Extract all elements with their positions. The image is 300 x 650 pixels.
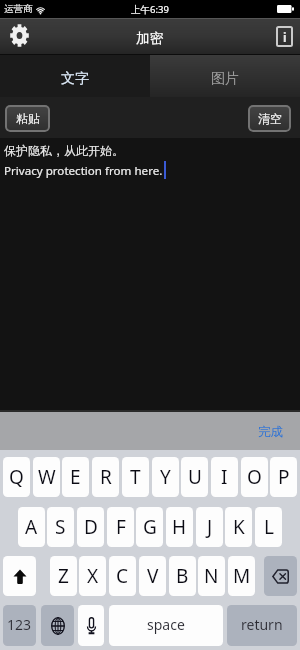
staticText: L xyxy=(264,514,274,540)
button[interactable]: P xyxy=(270,457,297,497)
button[interactable]: M xyxy=(228,556,255,596)
button[interactable]: 图片 xyxy=(150,55,300,97)
button[interactable]: 粘贴 xyxy=(5,105,50,132)
button[interactable]: Next keyboard xyxy=(41,605,74,646)
staticText: 123 xyxy=(7,615,32,634)
button[interactable]: I xyxy=(211,457,238,497)
button[interactable]: 清空 xyxy=(248,105,291,132)
staticText: Y xyxy=(160,464,171,490)
staticText: 加密 xyxy=(136,30,164,47)
button[interactable]: return xyxy=(227,605,297,646)
staticText: N xyxy=(204,563,219,589)
button[interactable]: E xyxy=(62,457,89,497)
button[interactable]: A xyxy=(18,507,45,547)
staticText: Z xyxy=(58,563,69,589)
button[interactable]: L xyxy=(255,507,282,547)
staticText: U xyxy=(188,464,202,490)
button[interactable]: 文字 xyxy=(0,55,150,97)
button[interactable]: Info xyxy=(276,26,293,47)
staticText: K xyxy=(233,514,245,540)
button[interactable]: U xyxy=(181,457,208,497)
button[interactable]: Q xyxy=(3,457,30,497)
button[interactable]: Backspace xyxy=(264,556,297,596)
button[interactable]: R xyxy=(92,457,119,497)
button[interactable]: Shift xyxy=(3,556,36,596)
button[interactable]: C xyxy=(109,556,136,596)
staticText: C xyxy=(116,563,129,589)
staticText: return xyxy=(241,615,283,634)
button[interactable]: B xyxy=(169,556,196,596)
button[interactable]: Settings xyxy=(4,20,34,50)
staticText: 完成 xyxy=(258,424,283,440)
staticText: 文字 xyxy=(61,70,89,88)
staticText: F xyxy=(116,514,126,540)
staticText: 保护隐私，从此开始。 xyxy=(4,143,124,158)
staticText: 清空 xyxy=(258,111,282,126)
button[interactable]: X xyxy=(79,556,106,596)
staticText: X xyxy=(87,563,99,589)
staticText: 图片 xyxy=(211,70,239,88)
button[interactable]: V xyxy=(139,556,166,596)
button[interactable]: Z xyxy=(50,556,77,596)
staticText: Q xyxy=(9,464,24,490)
staticText: V xyxy=(147,563,159,589)
staticText: G xyxy=(143,514,157,540)
staticText: M xyxy=(233,563,251,589)
button[interactable]: 完成 xyxy=(255,421,286,443)
button[interactable]: S xyxy=(47,507,74,547)
button[interactable]: Numbers xyxy=(3,605,36,646)
button[interactable]: T xyxy=(122,457,149,497)
staticText: space xyxy=(147,615,185,634)
staticText: Privacy protection from here. xyxy=(4,163,163,179)
staticText: J xyxy=(207,514,213,540)
button[interactable]: N xyxy=(198,556,225,596)
staticText: W xyxy=(38,464,56,490)
staticText: D xyxy=(84,514,98,540)
staticText: R xyxy=(100,464,112,490)
button[interactable]: Dictation xyxy=(78,605,104,646)
staticText: 运营商 xyxy=(4,3,33,15)
staticText: O xyxy=(247,464,262,490)
staticText: S xyxy=(55,514,66,540)
button[interactable]: D xyxy=(77,507,104,547)
staticText: P xyxy=(278,464,290,490)
staticText: 粘贴 xyxy=(16,111,40,126)
button[interactable]: F xyxy=(107,507,134,547)
button[interactable]: Y xyxy=(152,457,179,497)
staticText: A xyxy=(25,514,38,540)
button[interactable]: J xyxy=(196,507,223,547)
button[interactable]: K xyxy=(225,507,252,547)
button[interactable]: W xyxy=(33,457,60,497)
staticText: B xyxy=(176,563,189,589)
staticText: I xyxy=(221,464,228,490)
button[interactable]: H xyxy=(166,507,193,547)
staticText: i xyxy=(283,29,287,45)
staticText: E xyxy=(70,464,81,490)
staticText: H xyxy=(172,514,187,540)
staticText: 上午6:39 xyxy=(131,3,169,16)
button[interactable]: O xyxy=(241,457,268,497)
button[interactable]: G xyxy=(136,507,163,547)
staticText: T xyxy=(130,464,141,490)
button[interactable]: space xyxy=(109,605,223,646)
